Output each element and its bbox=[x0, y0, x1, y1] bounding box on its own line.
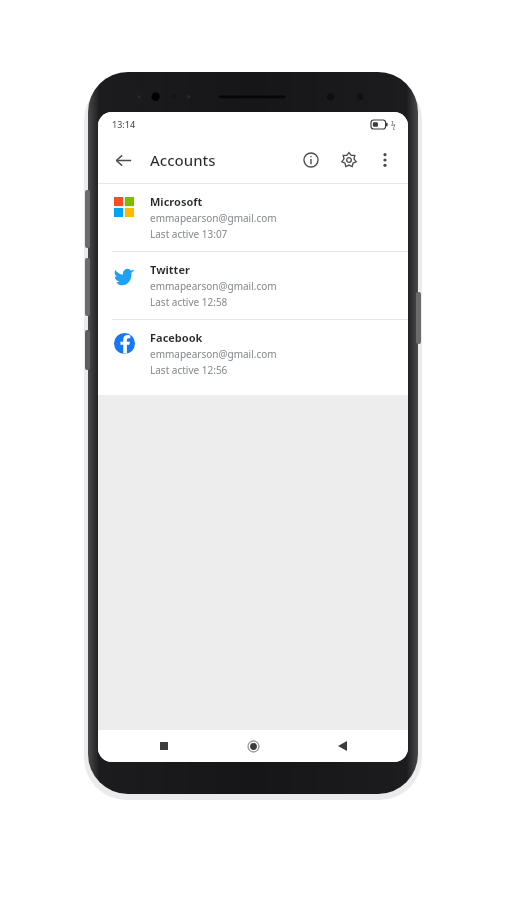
button[interactable]: Info bbox=[294, 143, 328, 177]
button[interactable]: Back bbox=[319, 731, 365, 761]
staticText: Last active 12:56 bbox=[150, 363, 228, 377]
button[interactable]: Home bbox=[230, 731, 276, 761]
staticText: Last active 12:58 bbox=[150, 295, 228, 309]
staticText: emmapearson@gmail.com bbox=[150, 279, 277, 293]
button[interactable]: Back bbox=[106, 143, 140, 177]
button[interactable]: More options bbox=[368, 143, 402, 177]
staticText: Twitter bbox=[150, 262, 190, 277]
button[interactable]: Facebook bbox=[98, 320, 408, 387]
staticText: emmapearson@gmail.com bbox=[150, 347, 277, 361]
button[interactable]: Twitter bbox=[98, 252, 408, 319]
button[interactable]: Recent apps bbox=[141, 731, 187, 761]
staticText: emmapearson@gmail.com bbox=[150, 211, 277, 225]
staticText: 13:14 bbox=[112, 118, 136, 130]
button[interactable]: Microsoft bbox=[98, 184, 408, 251]
staticText: Accounts bbox=[150, 150, 216, 170]
button[interactable]: Settings bbox=[332, 143, 366, 177]
staticText: ϟ bbox=[391, 119, 396, 130]
staticText: Last active 13:07 bbox=[150, 227, 228, 241]
staticText: Facebook bbox=[150, 330, 203, 345]
staticText: Microsoft bbox=[150, 194, 203, 209]
